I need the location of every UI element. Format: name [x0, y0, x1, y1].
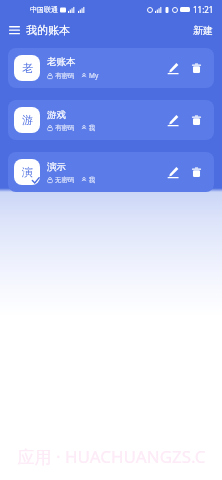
- staticText: 应用 · HUACHUANGZS.C: [17, 445, 206, 468]
- staticText: 老账本: [47, 56, 76, 68]
- button[interactable]: Delete: [185, 161, 208, 184]
- button[interactable]: Delete: [185, 57, 208, 80]
- button[interactable]: 游: [8, 100, 214, 140]
- button[interactable]: 新建: [184, 20, 222, 41]
- button[interactable]: Delete: [185, 109, 208, 132]
- staticText: 中国联通: [30, 5, 58, 14]
- staticText: 我: [89, 176, 96, 184]
- staticText: 无密码: [55, 176, 75, 184]
- button[interactable]: 老: [8, 48, 214, 88]
- staticText: 我: [89, 124, 96, 132]
- staticText: My: [89, 71, 99, 80]
- button[interactable]: Edit: [161, 108, 185, 132]
- button[interactable]: Edit: [161, 160, 185, 184]
- staticText: 11:21: [193, 4, 214, 15]
- staticText: 演: [22, 165, 33, 179]
- other: Menu: [7, 23, 21, 37]
- staticText: 老: [22, 61, 33, 75]
- button[interactable]: Edit: [161, 56, 185, 80]
- staticText: 有密码: [55, 124, 75, 132]
- button[interactable]: Menu: [0, 19, 76, 41]
- staticText: 游戏: [47, 109, 66, 121]
- staticText: 有密码: [55, 72, 75, 80]
- staticText: 我的账本: [26, 23, 70, 37]
- staticText: 演示: [47, 161, 66, 173]
- staticText: 新建: [193, 24, 213, 37]
- button[interactable]: 演: [8, 152, 214, 192]
- staticText: 游: [22, 113, 33, 127]
